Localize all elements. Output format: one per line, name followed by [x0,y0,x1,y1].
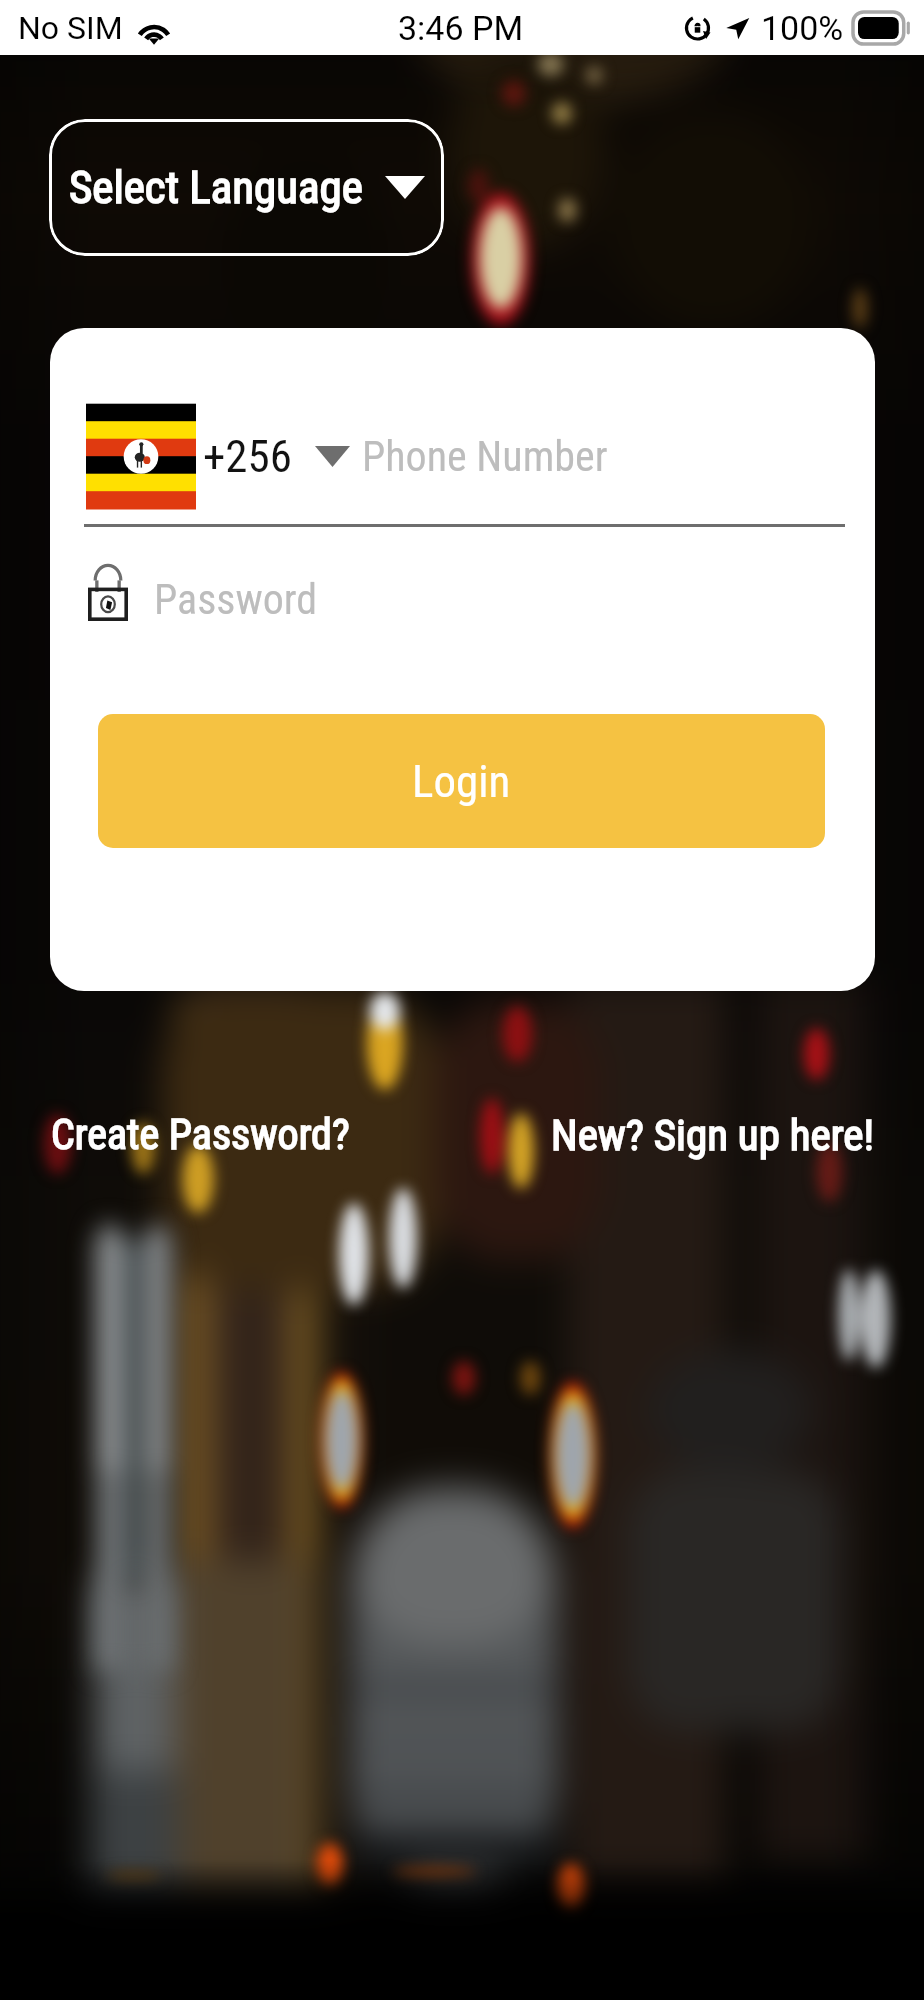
staticText: Select Language [69,161,363,214]
button[interactable]: Select Language [49,119,444,256]
staticText: Phone Number [362,432,608,481]
button[interactable]: New? Sign up here! [551,1110,875,1160]
staticText: No SIM [18,9,123,47]
button[interactable]: Login [98,714,825,848]
staticText: Password [154,575,318,624]
button[interactable]: Create Password? [51,1110,350,1159]
staticText: Create Password? [51,1110,350,1159]
staticText: +256 [203,430,293,483]
staticText: 100% [761,8,844,48]
staticText: Login [412,755,511,808]
staticText: New? Sign up here! [551,1110,875,1160]
staticText: 3:46 PM [398,8,524,48]
button[interactable]: Select country code +256 [86,404,350,509]
